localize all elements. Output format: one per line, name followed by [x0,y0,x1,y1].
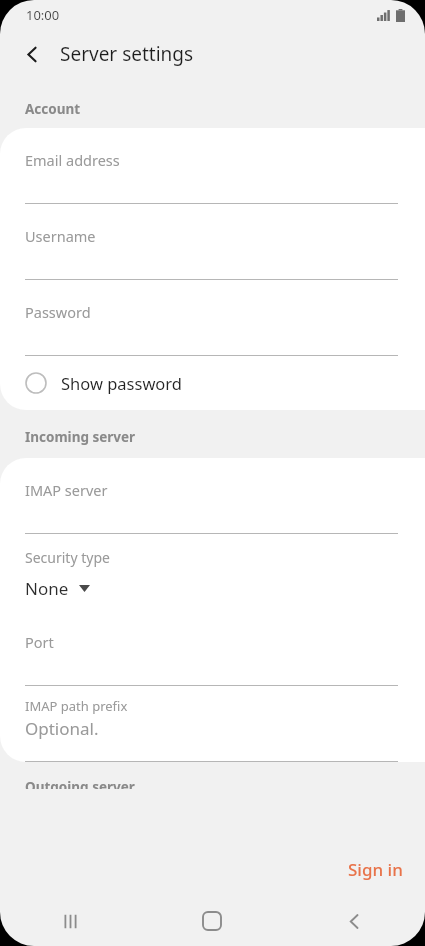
button[interactable]: Email address [0,128,425,204]
button[interactable]: Security type [0,534,425,610]
staticText: Port [25,632,54,652]
staticText: Password [25,302,91,322]
button[interactable]: Port [0,610,425,686]
button[interactable]: Sign in [326,850,425,889]
button[interactable]: IMAP server [0,458,425,534]
staticText: Show password [61,372,182,394]
staticText: Server settings [60,41,194,67]
staticText: IMAP server [25,480,108,500]
staticText: 10:00 [26,6,60,24]
button[interactable]: Username [0,204,425,280]
button[interactable]: Recent apps [0,896,141,946]
staticText: IMAP path prefix [25,697,128,715]
button[interactable]: Back [10,32,54,76]
button[interactable]: IMAP path prefix [0,686,425,762]
button[interactable]: Home [141,896,283,946]
staticText: Incoming server [25,428,136,446]
staticText: None [25,577,69,600]
button[interactable]: Show password [0,356,425,410]
staticText: Account [25,100,81,118]
staticText: Optional. [25,717,99,740]
staticText: Outgoing server [25,778,135,789]
button[interactable]: Back [283,896,425,946]
button[interactable]: Password [0,280,425,356]
staticText: Username [25,226,96,246]
staticText: Email address [25,150,120,170]
staticText: Security type [25,548,110,567]
staticText: Sign in [348,858,403,881]
